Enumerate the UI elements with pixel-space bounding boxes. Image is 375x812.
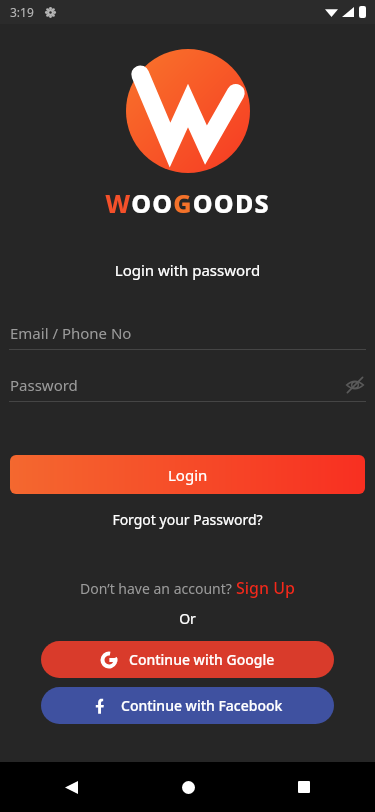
staticText: Continue with Facebook [121, 696, 283, 715]
button[interactable]: Password [0, 369, 375, 402]
staticText: Email / Phone No [10, 323, 132, 343]
button[interactable]: Continue with Google [41, 641, 334, 678]
button[interactable]: Recents [289, 772, 319, 802]
staticText: Forgot your Password? [0, 510, 375, 529]
staticText: Don’t have an account? [80, 579, 236, 598]
staticText: Continue with Google [129, 650, 275, 669]
staticText: WOOGOODS [105, 186, 270, 220]
button[interactable]: Email / Phone No [0, 317, 375, 350]
button[interactable]: Home [173, 772, 203, 802]
staticText: Login [168, 465, 208, 485]
button[interactable]: Back [56, 772, 86, 802]
staticText: Or [0, 609, 375, 628]
other: Show password [345, 375, 365, 395]
button[interactable]: Login [10, 455, 365, 494]
button[interactable]: Forgot your Password? [0, 507, 375, 532]
staticText: Password [10, 375, 78, 395]
button[interactable]: Sign Up [236, 577, 295, 599]
button[interactable]: Continue with Facebook [41, 687, 334, 724]
staticText: Login with password [0, 260, 375, 280]
staticText: 3:19 [10, 4, 34, 20]
staticText: Sign Up [236, 577, 295, 599]
